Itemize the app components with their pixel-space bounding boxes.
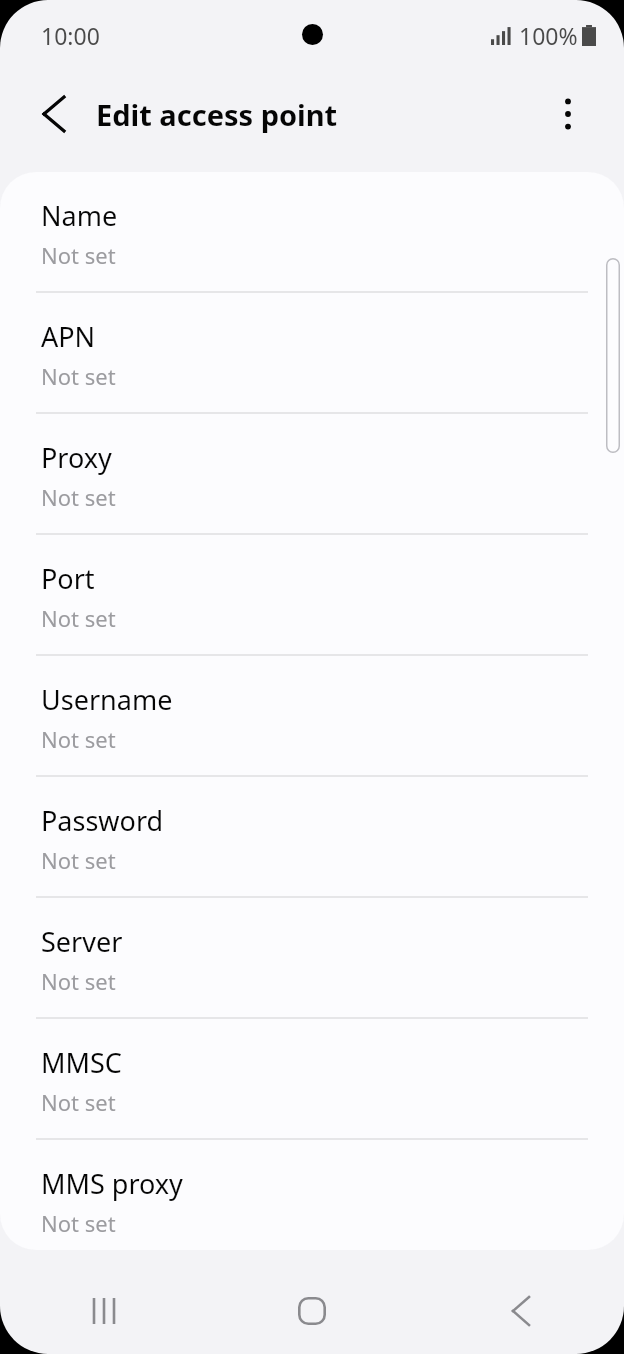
- button[interactable]: Name: [0, 172, 624, 293]
- button[interactable]: MMS proxy: [0, 1140, 624, 1250]
- staticText: MMS proxy: [41, 1165, 183, 1202]
- button[interactable]: Port: [0, 535, 624, 656]
- staticText: APN: [41, 318, 96, 355]
- button[interactable]: Username: [0, 656, 624, 777]
- staticText: Not set: [41, 603, 116, 633]
- button[interactable]: Back: [26, 86, 82, 142]
- staticText: Not set: [41, 240, 116, 270]
- staticText: Not set: [41, 361, 116, 391]
- button[interactable]: Password: [0, 777, 624, 898]
- staticText: Not set: [41, 482, 116, 512]
- button[interactable]: Proxy: [0, 414, 624, 535]
- staticText: Name: [41, 197, 118, 234]
- staticText: Not set: [41, 1087, 116, 1117]
- staticText: Username: [41, 681, 173, 718]
- staticText: Not set: [41, 966, 116, 996]
- staticText: Port: [41, 560, 95, 597]
- staticText: Server: [41, 923, 123, 960]
- button[interactable]: Home: [208, 1268, 416, 1354]
- button[interactable]: MMSC: [0, 1019, 624, 1140]
- staticText: Edit access point: [96, 95, 338, 134]
- staticText: 10:00: [41, 20, 100, 51]
- button[interactable]: Back: [416, 1268, 624, 1354]
- staticText: Not set: [41, 724, 116, 754]
- staticText: Password: [41, 802, 164, 839]
- button[interactable]: Server: [0, 898, 624, 1019]
- staticText: 100%: [519, 20, 578, 51]
- staticText: Not set: [41, 845, 116, 875]
- button[interactable]: More options: [540, 86, 596, 142]
- button[interactable]: APN: [0, 293, 624, 414]
- staticText: Proxy: [41, 439, 112, 476]
- button[interactable]: Recents: [0, 1268, 208, 1354]
- staticText: MMSC: [41, 1044, 122, 1081]
- staticText: Not set: [41, 1208, 116, 1238]
